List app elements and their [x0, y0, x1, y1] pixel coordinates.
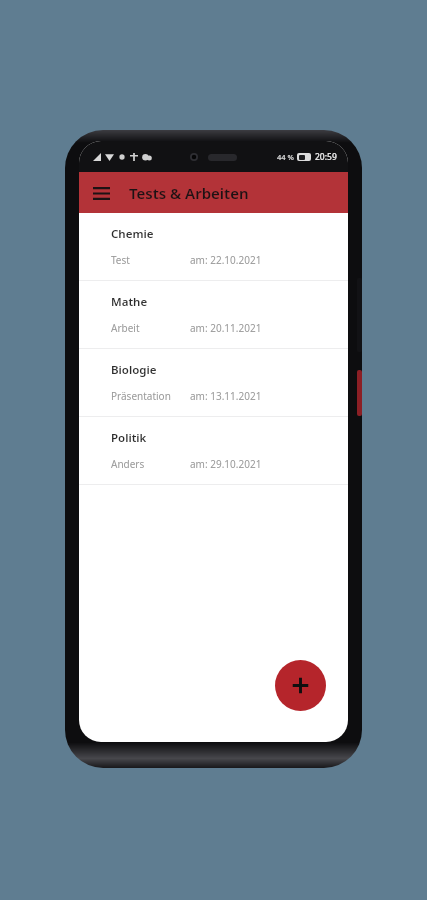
button[interactable]: Biologie [79, 349, 348, 416]
button[interactable]: Chemie [79, 213, 348, 280]
staticText: am: 13.11.2021 [190, 389, 262, 403]
staticText: Test [111, 253, 190, 267]
button[interactable]: Menü [84, 176, 118, 210]
staticText: 44 % [277, 152, 294, 162]
button[interactable]: Mathe [79, 281, 348, 348]
staticText: Präsentation [111, 389, 190, 403]
staticText: am: 29.10.2021 [190, 457, 262, 471]
staticText: Tests & Arbeiten [129, 183, 249, 203]
staticText: Mathe [111, 294, 148, 310]
staticText: Politik [111, 430, 147, 446]
staticText: 20:59 [315, 151, 337, 163]
staticText: Chemie [111, 226, 154, 242]
staticText: Biologie [111, 362, 157, 378]
staticText: am: 22.10.2021 [190, 253, 262, 267]
button[interactable]: Politik [79, 417, 348, 484]
button[interactable]: Hinzufügen [275, 660, 326, 711]
staticText: Arbeit [111, 321, 190, 335]
staticText: Anders [111, 457, 190, 471]
staticText: am: 20.11.2021 [190, 321, 262, 335]
